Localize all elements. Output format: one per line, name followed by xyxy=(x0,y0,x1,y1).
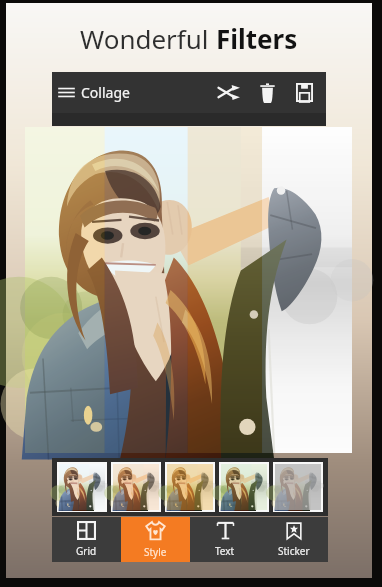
button[interactable]: Text xyxy=(190,517,259,562)
button[interactable]: Save xyxy=(286,72,323,113)
button[interactable]: Shuffle xyxy=(208,72,249,113)
button[interactable] xyxy=(221,464,267,510)
staticText: Wonderful xyxy=(80,21,216,56)
button[interactable]: Grid xyxy=(52,517,121,562)
staticText: Grid xyxy=(76,544,97,558)
staticText: Sticker xyxy=(278,544,310,558)
button[interactable] xyxy=(59,464,105,510)
staticText: Style xyxy=(144,545,167,559)
button[interactable]: Delete xyxy=(249,72,286,113)
staticText: Filters xyxy=(216,21,298,56)
button[interactable]: Style xyxy=(121,517,190,562)
button[interactable] xyxy=(167,464,213,510)
button[interactable] xyxy=(25,127,352,453)
button[interactable] xyxy=(113,464,159,510)
button[interactable]: Sticker xyxy=(259,517,328,562)
button[interactable] xyxy=(275,464,321,510)
button[interactable]: Collage xyxy=(81,83,130,102)
button[interactable]: Menu xyxy=(52,72,81,113)
staticText: Text xyxy=(215,544,235,558)
